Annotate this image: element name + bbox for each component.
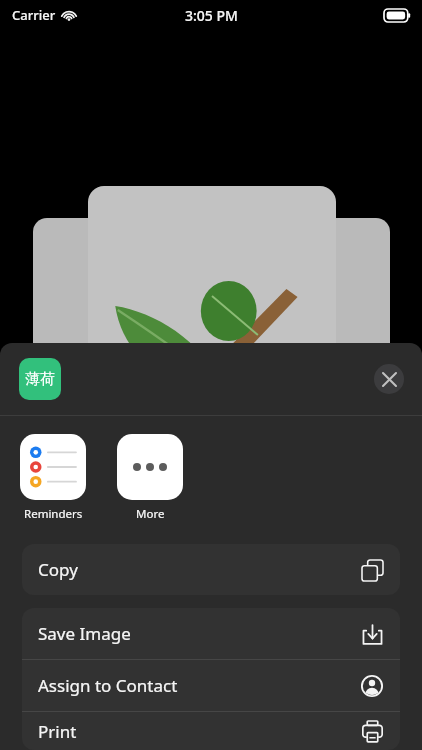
button[interactable]: Save Image [22,608,400,659]
staticText: Reminders [24,506,83,522]
button[interactable]: Reminders [20,434,86,522]
button[interactable]: Close [374,364,404,394]
staticText: Assign to Contact [38,674,178,697]
staticText: 3:05 PM [185,6,238,25]
button[interactable]: 薄荷 [19,358,61,400]
staticText: Save Image [38,622,131,645]
button[interactable]: Copy [22,544,400,595]
button[interactable]: More [117,434,183,522]
button[interactable]: Print [22,712,400,750]
staticText: 薄荷 [25,370,55,389]
staticText: Print [38,720,77,743]
staticText: Carrier [12,6,56,24]
button[interactable]: Assign to Contact [22,660,400,711]
staticText: Copy [38,558,78,581]
staticText: More [136,506,165,522]
